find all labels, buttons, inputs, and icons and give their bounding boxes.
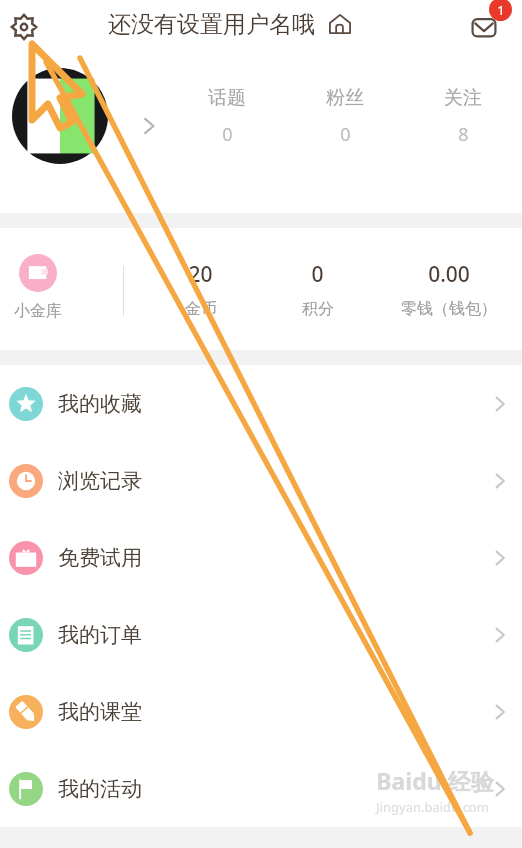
button[interactable]: 免费试用 <box>0 519 522 596</box>
staticText: 免费试用 <box>58 545 142 571</box>
button[interactable]: Settings <box>2 5 46 49</box>
button[interactable]: 0 <box>259 258 376 321</box>
button[interactable]: 小金库 <box>10 254 66 321</box>
staticText: 关注 <box>444 86 482 110</box>
staticText: Baidu 经验 <box>376 765 494 796</box>
button[interactable]: 浏览记录 <box>0 442 522 519</box>
staticText: 小金库 <box>14 301 62 321</box>
button[interactable]: 20 <box>142 258 259 321</box>
staticText: 还没有设置用户名哦 <box>108 10 315 39</box>
staticText: 零钱（钱包） <box>401 299 497 319</box>
button[interactable]: 我的活动 <box>0 750 522 827</box>
button[interactable]: 0.00 <box>376 258 522 321</box>
staticText: 1 <box>497 1 505 19</box>
button[interactable]: 关注 <box>404 82 522 151</box>
button[interactable]: Messages <box>460 2 508 50</box>
button[interactable]: 我的收藏 <box>0 365 522 442</box>
staticText: 0 <box>311 260 324 289</box>
button[interactable]: 我的订单 <box>0 596 522 673</box>
button[interactable]: 话题 <box>168 82 286 151</box>
staticText: 金币 <box>185 299 217 319</box>
staticText: 积分 <box>302 299 334 319</box>
staticText: 0 <box>222 122 233 147</box>
staticText: 我的活动 <box>58 776 142 802</box>
staticText: 0.00 <box>428 260 470 289</box>
staticText: Jingyan.baidu.com <box>376 798 489 816</box>
staticText: 0 <box>340 122 351 147</box>
button[interactable] <box>12 68 108 164</box>
staticText: 8 <box>458 122 469 147</box>
button[interactable]: Home <box>325 9 355 39</box>
staticText: 话题 <box>208 86 246 110</box>
staticText: 我的收藏 <box>58 391 142 417</box>
button[interactable]: 粉丝 <box>286 82 404 151</box>
staticText: 粉丝 <box>326 86 364 110</box>
staticText: 我的课堂 <box>58 699 142 725</box>
staticText: 浏览记录 <box>58 468 142 494</box>
button[interactable]: 我的课堂 <box>0 673 522 750</box>
staticText: 我的订单 <box>58 622 142 648</box>
staticText: 20 <box>188 260 213 289</box>
